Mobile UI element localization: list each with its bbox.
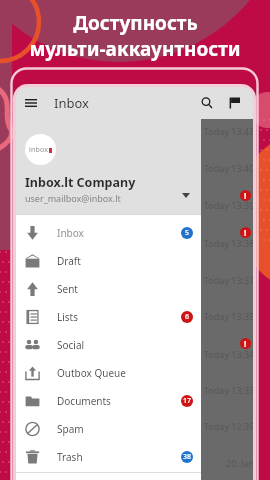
staticText: 17	[183, 396, 192, 406]
staticText: y	[120, 361, 126, 375]
staticText: Draft	[57, 254, 81, 268]
staticText: 38	[183, 452, 192, 462]
staticText: Today 13:39	[204, 199, 253, 211]
staticText: user_mailbox@inbox.lt	[25, 192, 121, 204]
button[interactable]: Draft	[16, 247, 201, 275]
staticText: Documents	[57, 394, 111, 408]
staticText: Inbox.lt Company	[25, 174, 136, 191]
staticText: Social	[57, 338, 85, 352]
staticText: мульти-аккаунтности	[29, 36, 241, 62]
staticText: Sent	[57, 282, 78, 296]
staticText: !	[244, 338, 247, 349]
button[interactable]: Trash	[16, 443, 201, 471]
staticText: 20. Jan	[226, 457, 253, 469]
staticText: Today 13:34	[204, 348, 253, 360]
button[interactable]: Documents	[16, 387, 201, 415]
button[interactable]: Sent	[16, 275, 201, 303]
staticText: Today 13:37	[204, 274, 253, 286]
staticText: Inbox	[57, 226, 84, 240]
staticText: Доступность	[73, 10, 198, 36]
staticText: 5	[185, 228, 190, 238]
staticText: !	[244, 190, 247, 201]
staticText: sany	[120, 212, 143, 226]
staticText: Outbox Queue	[57, 366, 126, 380]
staticText: Today 13:38	[204, 237, 253, 249]
staticText: Today 12:39	[204, 420, 253, 432]
staticText: 6	[185, 312, 190, 322]
staticText: Today 13:43	[204, 125, 253, 137]
button[interactable]: Social	[16, 331, 201, 359]
staticText: Trash	[57, 450, 83, 464]
staticText: Spam	[57, 422, 84, 436]
button[interactable]: Outbox Queue	[16, 359, 201, 387]
button[interactable]: Spam	[16, 415, 201, 443]
staticText: Inbox	[54, 94, 89, 112]
button[interactable]: Inbox	[16, 219, 201, 247]
staticText: Today 13:33	[204, 384, 253, 396]
button[interactable]: Search	[195, 91, 219, 115]
button[interactable]: Switch account	[176, 185, 196, 205]
button[interactable]: Lists	[16, 303, 201, 331]
staticText: Today 13:35	[204, 310, 253, 322]
staticText: inbox	[29, 145, 49, 155]
staticText: !	[244, 227, 247, 238]
staticText: Today 13:40	[204, 162, 253, 174]
staticText: Lists	[57, 310, 79, 324]
staticText: coocfu!	[120, 470, 156, 480]
button[interactable]: Open navigation drawer	[20, 92, 42, 114]
button[interactable]: Flag	[223, 91, 247, 115]
